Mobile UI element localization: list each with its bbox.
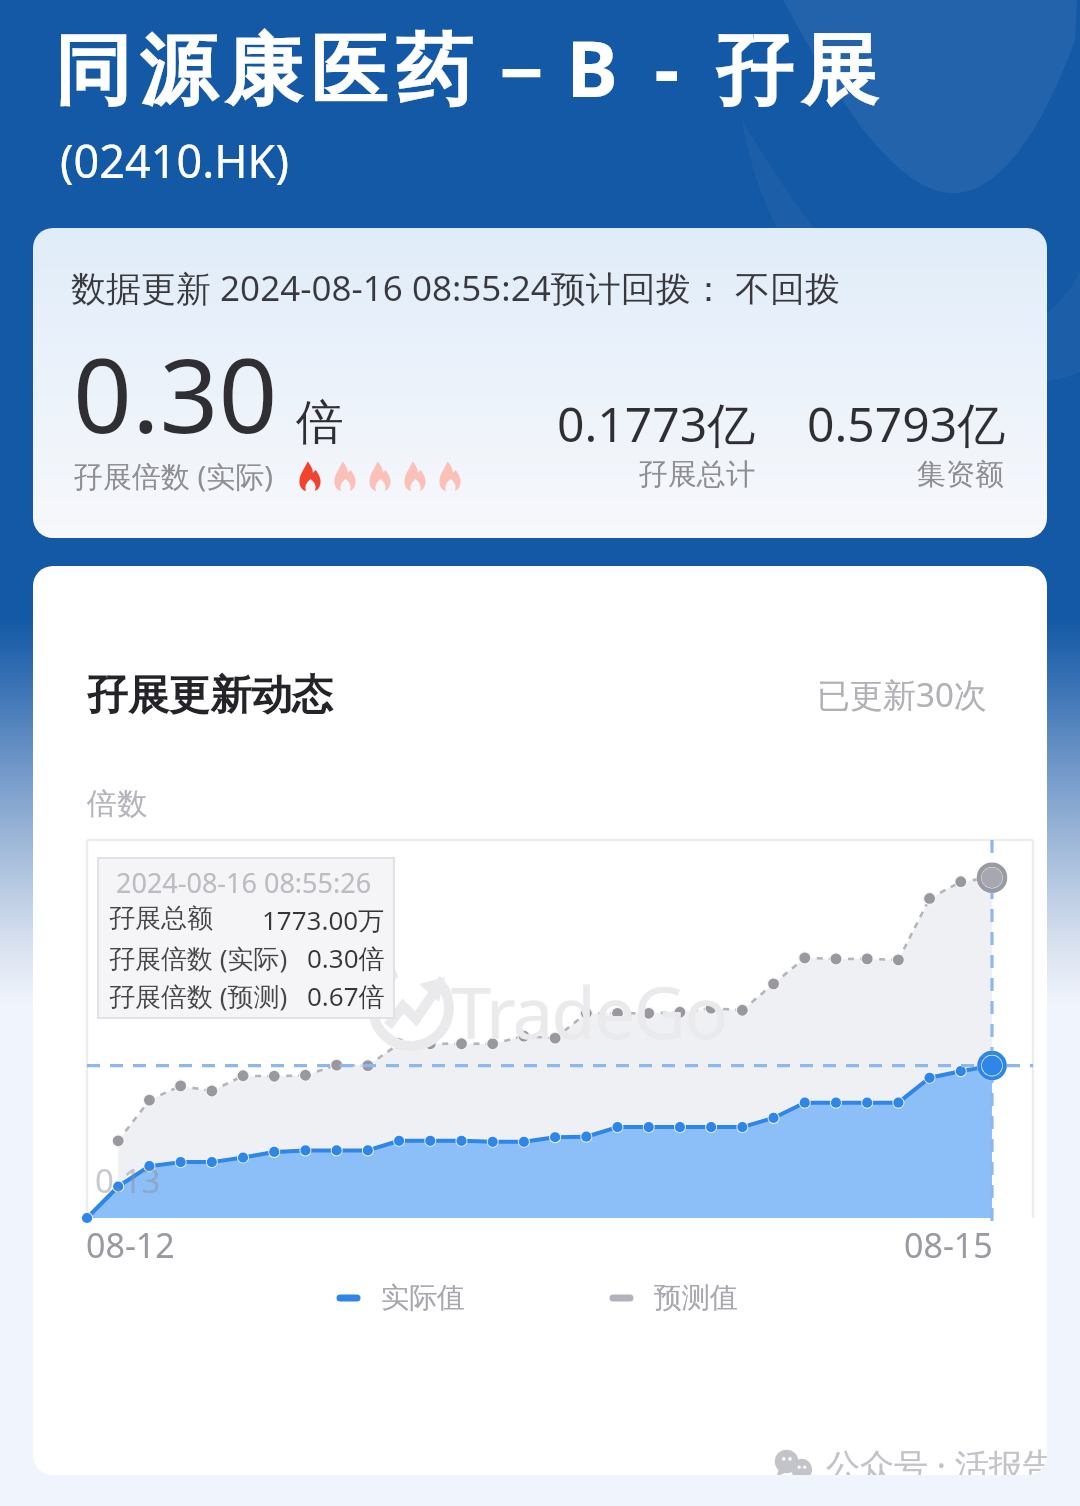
staticText: 预测值	[654, 1280, 738, 1315]
button[interactable]: Subscription heat rating 1 of 5	[298, 454, 473, 498]
staticText: 实际值	[381, 1280, 465, 1315]
staticText: 0.30倍	[307, 940, 385, 976]
other: WeChat official account	[774, 1447, 816, 1475]
button[interactable]: WeChat official account	[774, 1442, 1047, 1475]
button[interactable]: 预测值	[610, 1280, 738, 1315]
staticText: 孖展倍数 (实际)	[74, 456, 273, 496]
staticText: 孖展倍数 (实际)	[109, 940, 288, 976]
staticText: 倍数	[87, 785, 147, 823]
staticText: 0.5793亿	[807, 391, 1006, 457]
staticText: 08-12	[86, 1222, 175, 1268]
staticText: 1773.00万	[262, 902, 385, 938]
staticText: 孖展总计	[639, 456, 755, 493]
staticText: 公众号 · 活报告	[826, 1442, 1047, 1475]
staticText: 2024-08-16 08:55:26	[116, 864, 372, 901]
staticText: 集资额	[917, 456, 1004, 493]
staticText: 孖展更新动态	[87, 670, 333, 722]
staticText: 孖展倍数 (预测)	[109, 978, 288, 1014]
staticText: 0.67倍	[307, 978, 385, 1014]
button[interactable]: 孖展更新动态	[33, 566, 1047, 1475]
staticText: 0.13	[95, 1158, 161, 1203]
staticText: 孖展总额	[109, 902, 213, 935]
button[interactable]: 实际值	[337, 1280, 465, 1315]
staticText: 倍	[296, 393, 344, 453]
staticText: TradeGo	[451, 962, 727, 1060]
staticText: (02410.HK)	[60, 130, 289, 191]
button[interactable]: 数据更新 2024-08-16 08:55:24预计回拨： 不回拨	[33, 228, 1047, 538]
staticText: 0.30	[73, 323, 278, 463]
staticText: 已更新30次	[817, 672, 987, 717]
staticText: 08-15	[904, 1222, 993, 1268]
staticText: 数据更新 2024-08-16 08:55:24预计回拨： 不回拨	[71, 264, 840, 312]
staticText: 0.1773亿	[557, 391, 756, 457]
staticText: 同源康医药－B - 孖展	[54, 15, 887, 120]
